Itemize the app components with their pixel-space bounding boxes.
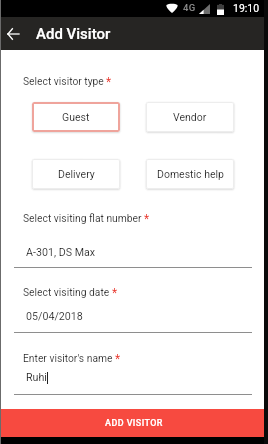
staticText: Ruhi — [26, 371, 47, 384]
staticText: Delivery — [58, 168, 95, 180]
button[interactable]: Delivery — [32, 159, 120, 189]
staticText: ADD VISITOR — [105, 418, 163, 429]
staticText: A-301, DS Max — [26, 246, 96, 259]
staticText: * — [115, 352, 121, 366]
staticText: Domestic help — [157, 168, 224, 180]
staticText: 4G — [183, 2, 196, 13]
button[interactable]: Domestic help — [146, 159, 234, 189]
button[interactable]: Guest — [32, 102, 120, 132]
staticText: Vendor — [173, 111, 207, 123]
staticText: Select visiting date — [23, 286, 110, 298]
staticText: Enter visitor's name — [23, 352, 113, 364]
staticText: * — [144, 212, 150, 226]
staticText: 19:10 — [233, 2, 260, 14]
staticText: Guest — [62, 111, 90, 123]
button[interactable]: Vendor — [146, 102, 234, 132]
button[interactable]: Back — [0, 17, 26, 50]
staticText: * — [106, 75, 112, 89]
staticText: 05/04/2018 — [26, 310, 83, 323]
staticText: * — [112, 286, 118, 300]
staticText: Select visiting flat number — [23, 212, 142, 224]
staticText: Select visitor type — [23, 75, 104, 87]
staticText: Add Visitor — [36, 25, 111, 43]
button[interactable]: ADD VISITOR — [0, 409, 268, 438]
